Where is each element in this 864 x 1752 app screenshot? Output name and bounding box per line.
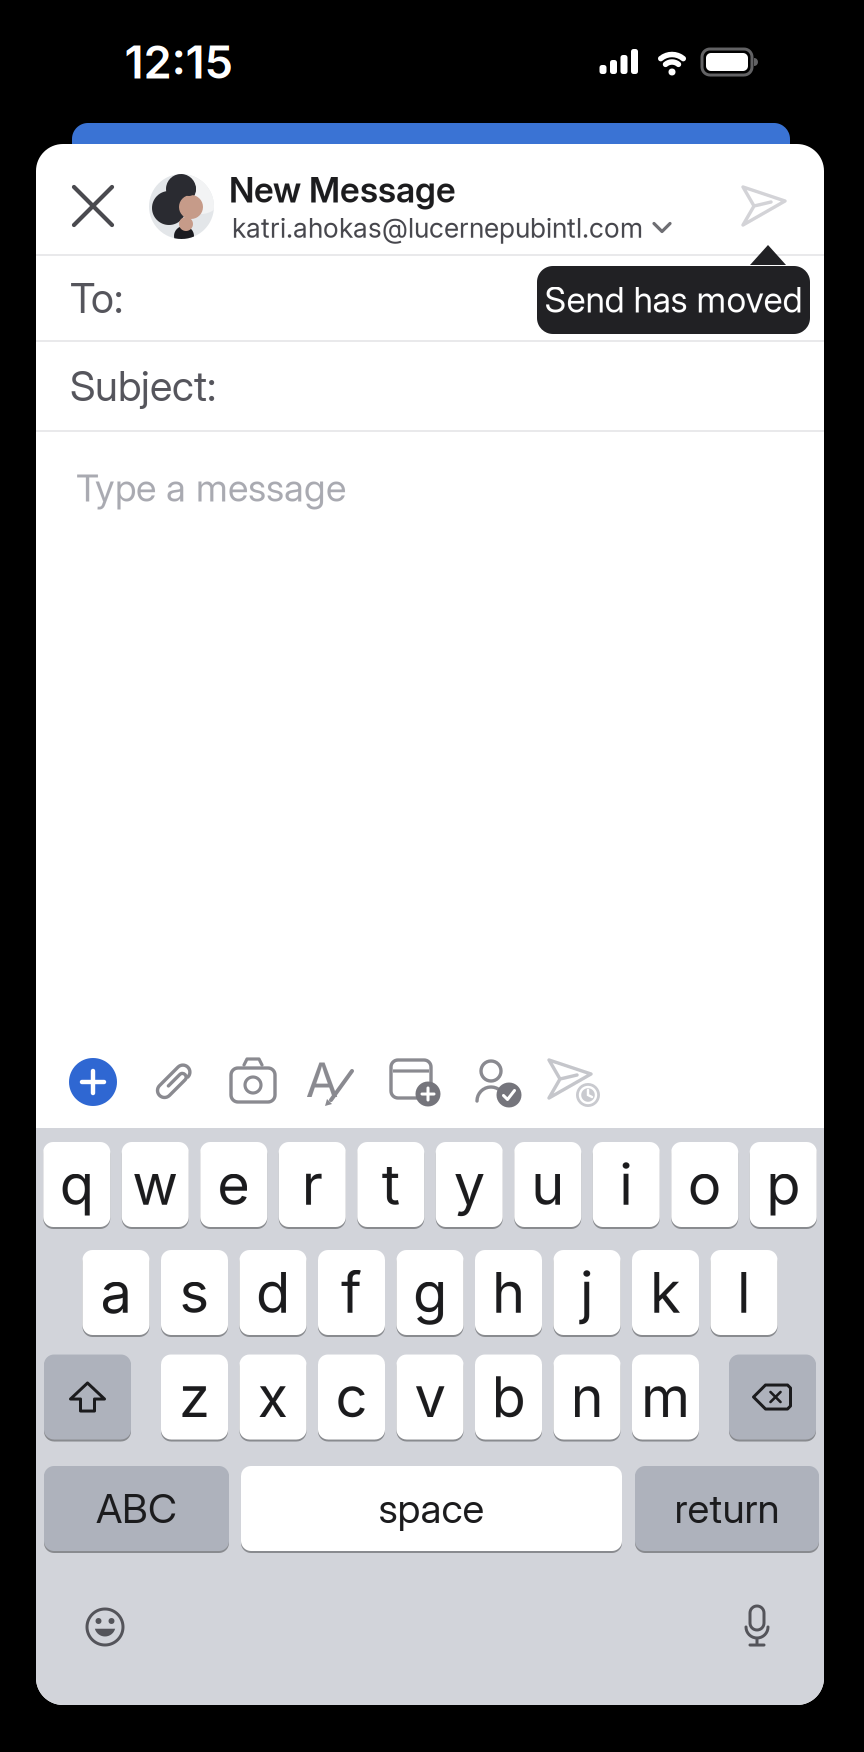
staticText: m — [641, 1364, 690, 1430]
staticText: b — [491, 1364, 525, 1430]
staticText: 12:15 — [124, 35, 233, 89]
staticText: l — [737, 1259, 751, 1326]
button[interactable]: e — [200, 1141, 267, 1228]
staticText: Type a message — [76, 466, 346, 510]
button[interactable]: n — [553, 1353, 620, 1440]
button[interactable]: v — [396, 1353, 463, 1440]
staticText: w — [132, 1151, 178, 1218]
staticText: s — [179, 1259, 209, 1326]
button[interactable]: g — [396, 1249, 463, 1336]
button[interactable]: z — [161, 1353, 228, 1440]
button[interactable]: y — [436, 1141, 503, 1228]
button[interactable]: x — [239, 1353, 306, 1440]
button[interactable]: o — [671, 1141, 738, 1228]
staticText: a — [100, 1259, 131, 1326]
button[interactable]: Attach file — [149, 1058, 197, 1106]
button[interactable]: Add — [69, 1058, 117, 1106]
staticText: f — [341, 1259, 362, 1326]
staticText: k — [650, 1259, 681, 1326]
staticText: g — [413, 1259, 447, 1326]
staticText: space — [378, 1485, 484, 1532]
button[interactable]: return — [635, 1465, 819, 1552]
staticText: i — [619, 1151, 633, 1218]
button[interactable]: Dictate — [742, 1605, 772, 1649]
staticText: z — [179, 1364, 210, 1430]
staticText: To: — [70, 274, 123, 322]
button[interactable]: u — [514, 1141, 581, 1228]
button[interactable]: katri.ahokas@lucernepubintl.com — [232, 212, 671, 244]
staticText: r — [302, 1151, 323, 1218]
button[interactable]: a — [82, 1249, 149, 1336]
button[interactable]: b — [475, 1353, 542, 1440]
button[interactable]: Emoji — [85, 1607, 125, 1647]
button[interactable]: j — [553, 1249, 620, 1336]
button[interactable]: Format text — [309, 1058, 357, 1106]
staticText: e — [217, 1151, 250, 1218]
staticText: o — [688, 1151, 722, 1218]
button[interactable]: h — [475, 1249, 542, 1336]
staticText: h — [492, 1259, 525, 1326]
button[interactable]: k — [632, 1249, 699, 1336]
button[interactable]: Shift — [44, 1353, 131, 1440]
button[interactable]: r — [279, 1141, 346, 1228]
staticText: x — [257, 1364, 288, 1430]
button[interactable]: Message body — [36, 431, 824, 1051]
button[interactable]: l — [710, 1249, 777, 1336]
button[interactable]: m — [632, 1353, 699, 1440]
staticText: New Message — [229, 170, 456, 210]
button[interactable]: Subject — [36, 341, 824, 431]
button[interactable]: Send availability — [389, 1057, 441, 1107]
staticText: Subject: — [70, 362, 216, 410]
staticText: y — [454, 1151, 485, 1218]
button[interactable]: i — [593, 1141, 660, 1228]
staticText: c — [335, 1364, 367, 1430]
button[interactable]: s — [161, 1249, 228, 1336]
staticText: ABC — [96, 1485, 177, 1532]
button[interactable]: p — [750, 1141, 817, 1228]
staticText: return — [674, 1485, 779, 1532]
staticText: p — [766, 1151, 800, 1218]
button[interactable]: Take photo — [229, 1058, 277, 1106]
button[interactable]: Delete — [729, 1353, 816, 1440]
button[interactable]: f — [318, 1249, 385, 1336]
button[interactable]: Numbers — [44, 1465, 229, 1552]
staticText: q — [60, 1151, 94, 1218]
button[interactable]: Request read receipt — [469, 1057, 521, 1107]
button[interactable]: Send — [741, 185, 787, 227]
staticText: v — [414, 1364, 445, 1430]
staticText: t — [382, 1151, 400, 1218]
button[interactable]: q — [43, 1141, 110, 1228]
button[interactable]: d — [239, 1249, 306, 1336]
staticText: u — [531, 1151, 564, 1218]
button[interactable]: c — [318, 1353, 385, 1440]
staticText: katri.ahokas@lucernepubintl.com — [232, 212, 643, 244]
staticText: j — [580, 1259, 594, 1326]
staticText: n — [570, 1364, 603, 1430]
button[interactable]: To — [36, 255, 824, 341]
staticText: Send has moved — [544, 280, 802, 320]
button[interactable]: t — [357, 1141, 424, 1228]
button[interactable]: Send later — [546, 1057, 600, 1107]
staticText: A — [305, 1052, 338, 1108]
button[interactable]: space — [241, 1465, 622, 1552]
staticText: d — [256, 1259, 290, 1326]
button[interactable]: w — [122, 1141, 189, 1228]
button[interactable]: Close — [71, 184, 115, 228]
